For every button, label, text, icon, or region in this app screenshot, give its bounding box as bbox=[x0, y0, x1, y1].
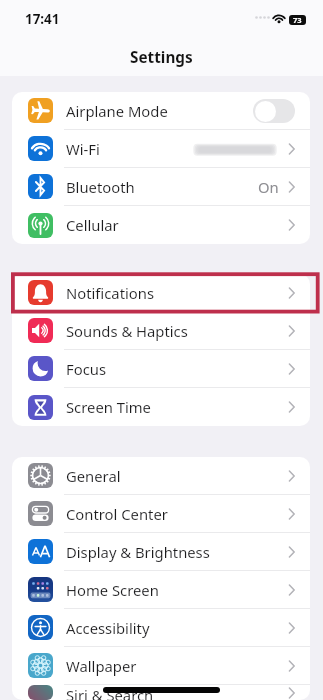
button[interactable]: Display & Brightness bbox=[12, 533, 310, 571]
button[interactable]: Notifications bbox=[12, 274, 310, 312]
button[interactable]: Control Center bbox=[12, 495, 310, 533]
button[interactable]: Siri & Search bbox=[12, 685, 310, 700]
staticText: Settings bbox=[130, 47, 193, 68]
staticText: Siri & Search bbox=[66, 685, 154, 700]
staticText: Display & Brightness bbox=[66, 542, 210, 562]
button[interactable]: Focus bbox=[12, 350, 310, 388]
staticText: Screen Time bbox=[66, 397, 151, 417]
button[interactable]: Accessibility bbox=[12, 609, 310, 647]
staticText: Accessibility bbox=[66, 618, 150, 638]
button[interactable]: Home Screen bbox=[12, 571, 310, 609]
staticText: 73 bbox=[293, 15, 302, 25]
button[interactable]: Sounds & Haptics bbox=[12, 312, 310, 350]
staticText: Home Screen bbox=[66, 580, 159, 600]
button[interactable]: Bluetooth bbox=[12, 168, 310, 206]
staticText: Wallpaper bbox=[66, 656, 137, 676]
staticText: Sounds & Haptics bbox=[66, 321, 188, 341]
staticText: Control Center bbox=[66, 504, 168, 524]
staticText: Cellular bbox=[66, 215, 119, 235]
staticText: On bbox=[258, 177, 279, 197]
staticText: Notifications bbox=[66, 283, 155, 303]
button[interactable]: General bbox=[12, 457, 310, 495]
staticText: 17:41 bbox=[25, 10, 60, 28]
staticText: Focus bbox=[66, 359, 106, 379]
button[interactable]: Wallpaper bbox=[12, 647, 310, 685]
staticText: General bbox=[66, 466, 121, 486]
staticText: Bluetooth bbox=[66, 177, 135, 197]
button[interactable]: Screen Time bbox=[12, 388, 310, 426]
staticText: Airplane Mode bbox=[66, 101, 168, 121]
button[interactable]: Cellular bbox=[12, 206, 310, 244]
button[interactable]: Wi-Fi bbox=[12, 130, 310, 168]
button[interactable]: Airplane Mode bbox=[12, 92, 310, 130]
staticText: Wi-Fi bbox=[66, 139, 100, 159]
